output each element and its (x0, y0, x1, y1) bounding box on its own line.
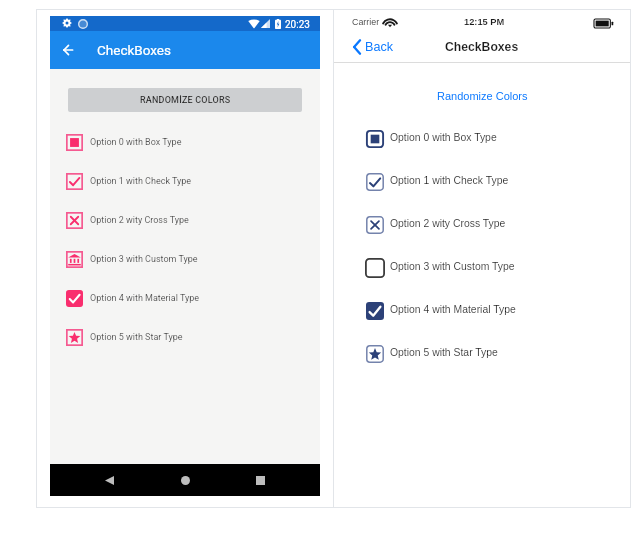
staticText: Carrier (352, 17, 380, 27)
staticText: CheckBoxes (97, 42, 171, 58)
button[interactable]: Option 3 with Custom Type (334, 245, 630, 288)
staticText: RANDOMİZE COLORS (140, 95, 231, 106)
staticText: Option 0 with Box Type (90, 137, 182, 148)
staticText: 12:15 PM (464, 17, 505, 27)
staticText: Option 1 with Check Type (90, 176, 192, 187)
button[interactable]: Option 3 with Custom Type (50, 240, 320, 279)
staticText: 20:23 (285, 19, 310, 31)
staticText: Option 4 with Material Type (90, 293, 200, 304)
button[interactable]: Option 0 with Box Type (334, 116, 630, 159)
button[interactable]: Option 0 with Box Type (50, 123, 320, 162)
button[interactable]: Option 4 with Material Type (50, 279, 320, 318)
button[interactable]: Option 1 with Check Type (334, 159, 630, 202)
button[interactable]: Option 5 with Star Type (50, 318, 320, 357)
button[interactable]: Back (95, 464, 123, 496)
staticText: Option 5 with Star Type (90, 332, 183, 343)
button[interactable]: RANDOMİZE COLORS (68, 88, 302, 112)
staticText: CheckBoxes (445, 40, 519, 54)
staticText: Option 2 wity Cross Type (390, 218, 506, 230)
staticText: Option 1 with Check Type (390, 175, 509, 187)
staticText: Option 4 with Material Type (390, 304, 516, 316)
button[interactable]: Randomize Colors (435, 90, 530, 102)
button[interactable]: Option 1 with Check Type (50, 162, 320, 201)
staticText: Option 0 with Box Type (390, 132, 497, 144)
staticText: Option 2 wity Cross Type (90, 215, 189, 226)
button[interactable]: Navigate up (56, 37, 80, 63)
button[interactable]: Option 4 with Material Type (334, 288, 630, 331)
button[interactable]: Option 5 with Star Type (334, 331, 630, 374)
staticText: Option 5 with Star Type (390, 347, 498, 359)
button[interactable]: Back (353, 39, 393, 55)
button[interactable]: Option 2 wity Cross Type (334, 202, 630, 245)
staticText: Back (365, 40, 393, 54)
button[interactable]: Recent apps (246, 464, 274, 496)
staticText: Option 3 with Custom Type (90, 254, 198, 265)
button[interactable]: Option 2 wity Cross Type (50, 201, 320, 240)
button[interactable]: Home (171, 464, 199, 496)
staticText: Option 3 with Custom Type (390, 261, 515, 273)
